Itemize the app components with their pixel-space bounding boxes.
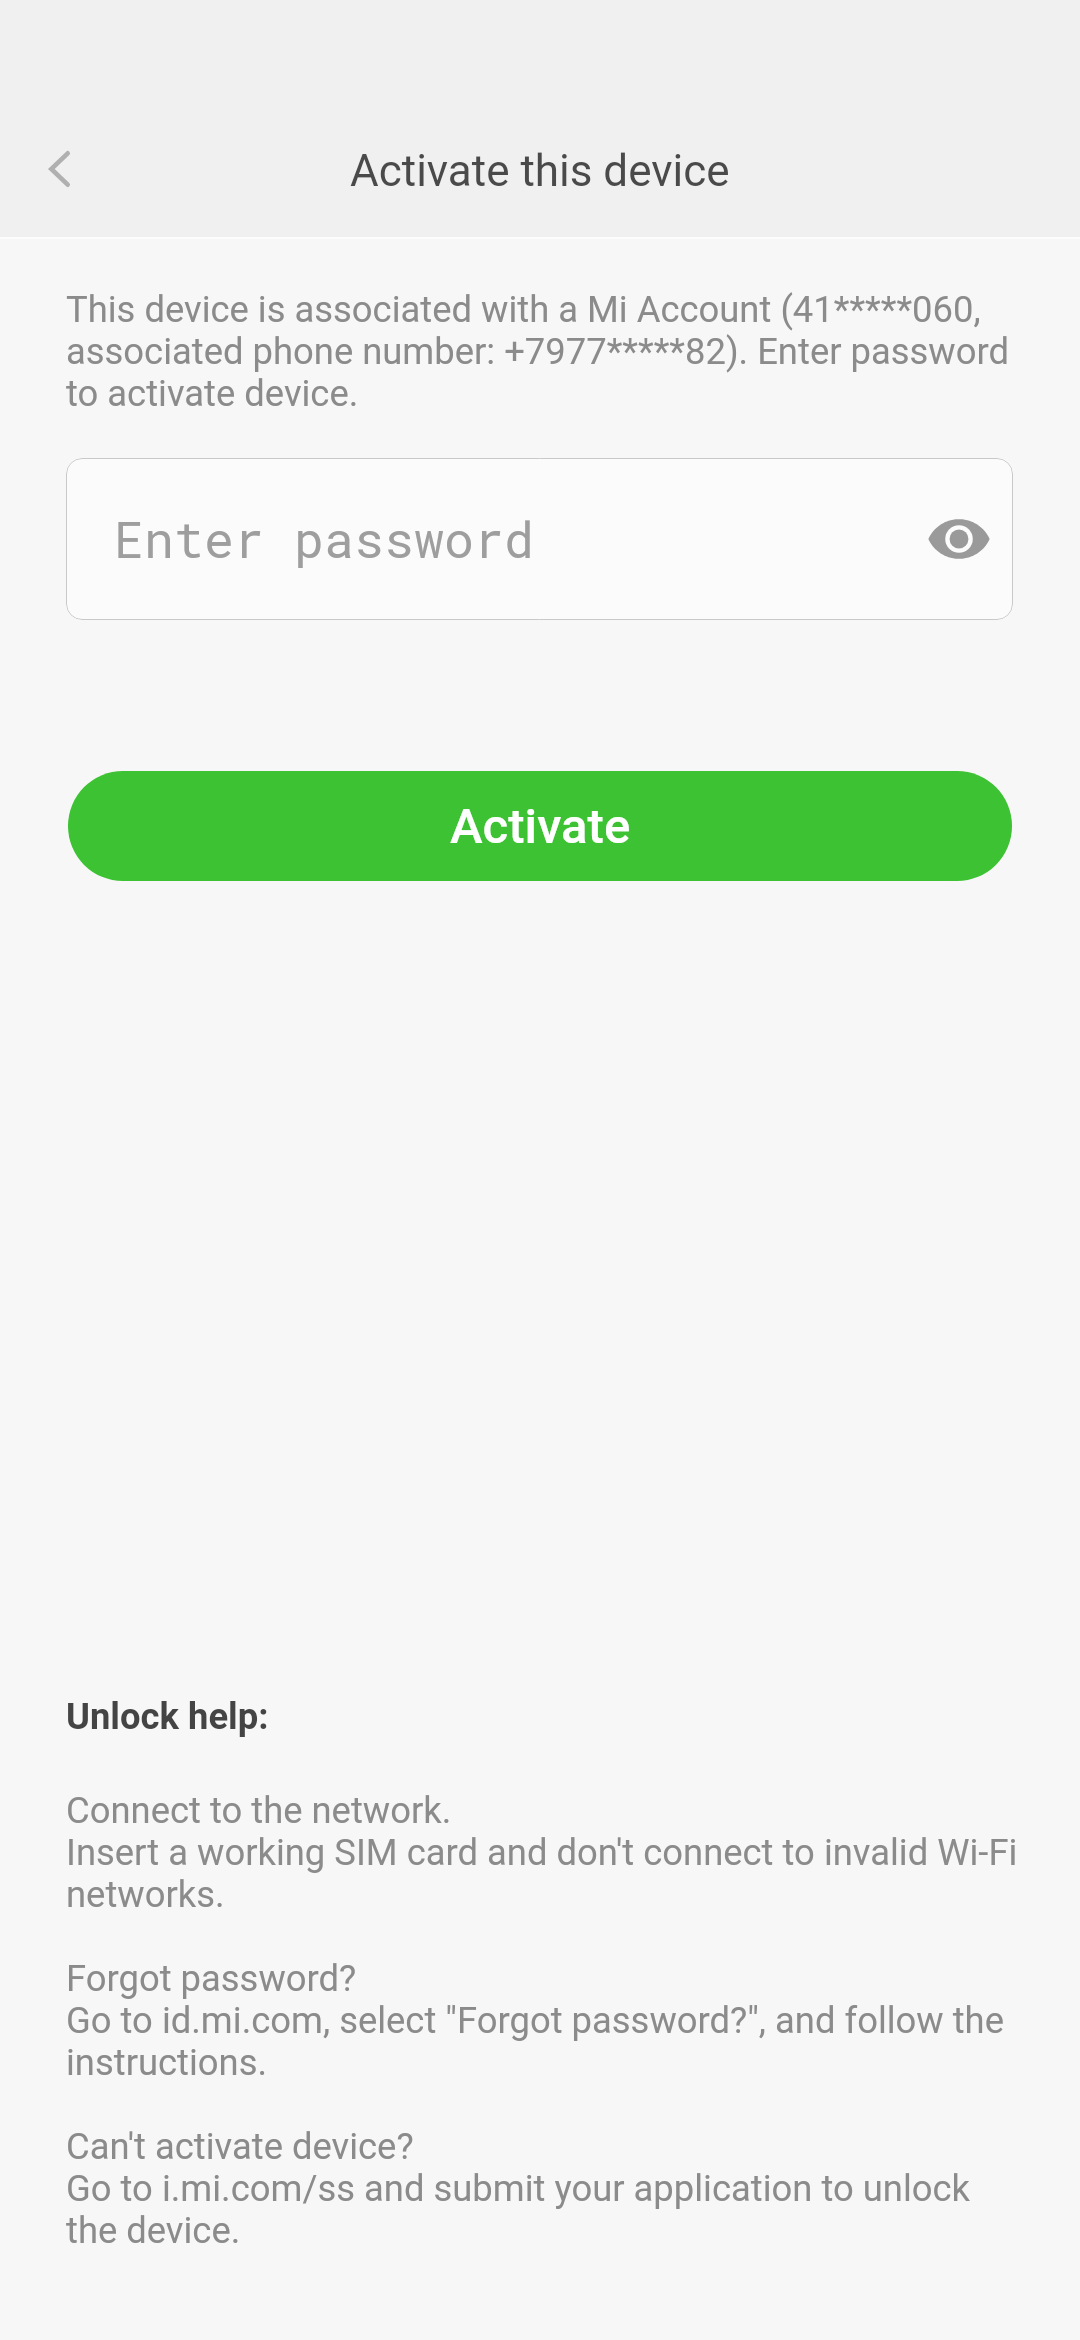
button[interactable]: Activate <box>68 771 1012 881</box>
staticText: Connect to the network. Insert a working… <box>66 1789 1030 2251</box>
staticText: Activate <box>450 798 631 855</box>
button[interactable]: Back <box>13 123 105 215</box>
staticText: This device is associated with a Mi Acco… <box>66 288 1022 414</box>
button[interactable]: Enter password <box>66 458 1013 620</box>
staticText: Enter password <box>114 512 535 570</box>
button[interactable]: Show password <box>915 495 1003 583</box>
staticText: Activate this device <box>350 145 730 197</box>
staticText: Unlock help: <box>66 1695 269 1737</box>
